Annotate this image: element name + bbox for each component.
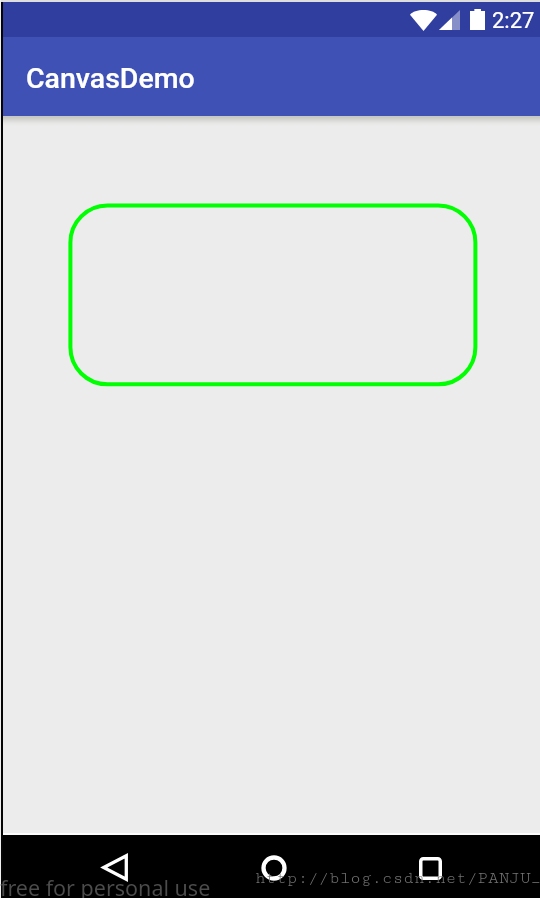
- staticText: 2:27: [492, 8, 535, 34]
- staticText: free for personal use: [0, 873, 211, 898]
- button[interactable]: Back: [61, 836, 168, 898]
- staticText: http://blog.csdn.net/PANJU_: [255, 868, 540, 887]
- button[interactable]: Recent apps: [377, 837, 484, 898]
- staticText: CanvasDemo: [26, 62, 195, 95]
- button[interactable]: Home: [220, 836, 327, 898]
- button[interactable]: CanvasDemo: [0, 37, 540, 116]
